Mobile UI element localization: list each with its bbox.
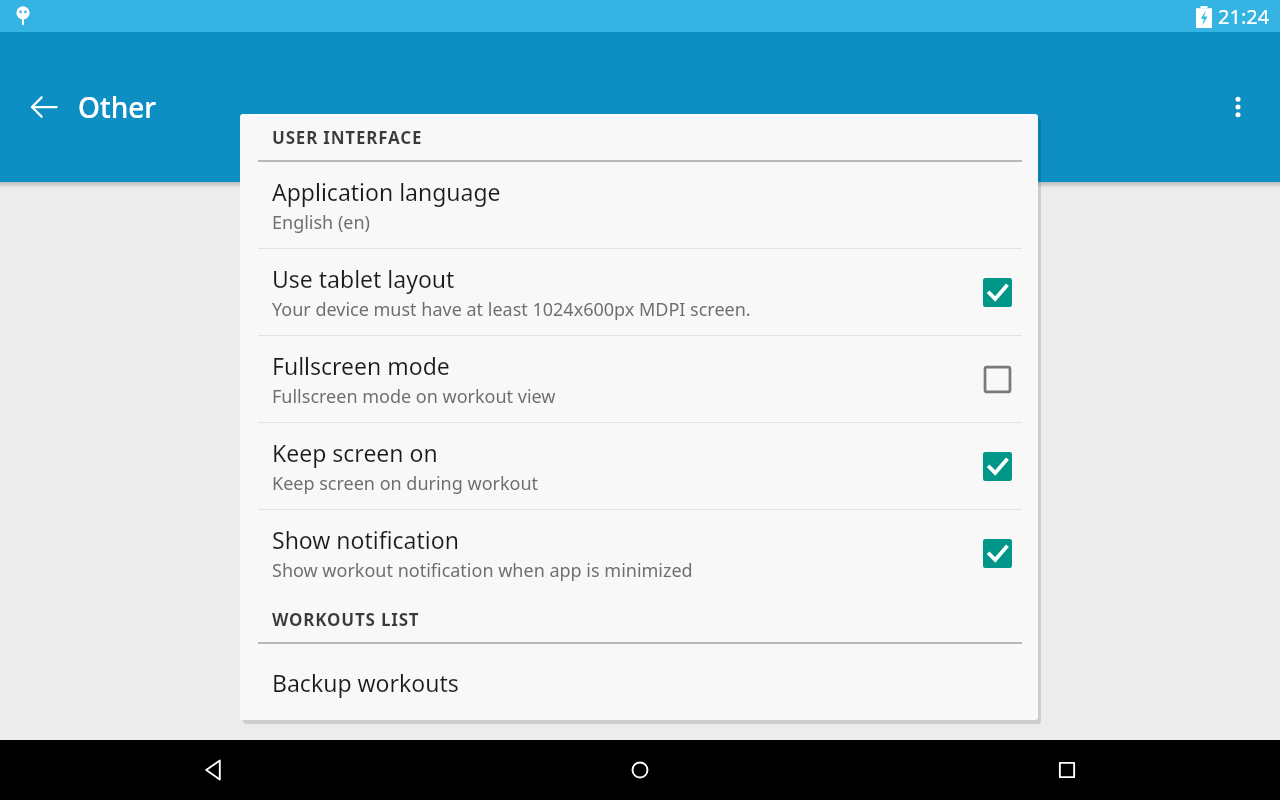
staticText: Fullscreen mode on workout view [272,384,556,409]
staticText: Show notification [272,524,459,555]
button[interactable]: Application language [240,162,1038,248]
staticText: Backup workouts [272,667,459,698]
button[interactable]: Backup workouts [240,644,1038,720]
button[interactable]: More options [1210,79,1266,135]
staticText: Fullscreen mode [272,350,450,381]
button[interactable]: Use tablet layout [956,249,1038,335]
button[interactable]: Back [0,740,426,800]
staticText: Other [78,88,157,126]
staticText: English (en) [272,210,370,235]
button[interactable]: Back [14,77,74,137]
staticText: Your device must have at least 1024x600p… [272,297,751,322]
staticText: Keep screen on [272,437,438,468]
staticText: Application language [272,176,501,207]
staticText: 21:24 [1218,3,1270,30]
button[interactable]: Use tablet layout [240,249,1038,335]
button[interactable]: Fullscreen mode [956,336,1038,422]
button[interactable]: Recents [853,740,1280,800]
staticText: Keep screen on during workout [272,471,539,496]
button[interactable]: Keep screen on [240,423,1038,509]
button[interactable]: Keep screen on [956,423,1038,509]
button[interactable]: Fullscreen mode [240,336,1038,422]
button[interactable]: Home [426,740,853,800]
staticText: WORKOUTS LIST [272,608,420,631]
staticText: USER INTERFACE [272,126,423,149]
staticText: Use tablet layout [272,263,455,294]
staticText: Show workout notification when app is mi… [272,558,693,583]
button[interactable]: Show notification [956,510,1038,596]
button[interactable]: Show notification [240,510,1038,596]
